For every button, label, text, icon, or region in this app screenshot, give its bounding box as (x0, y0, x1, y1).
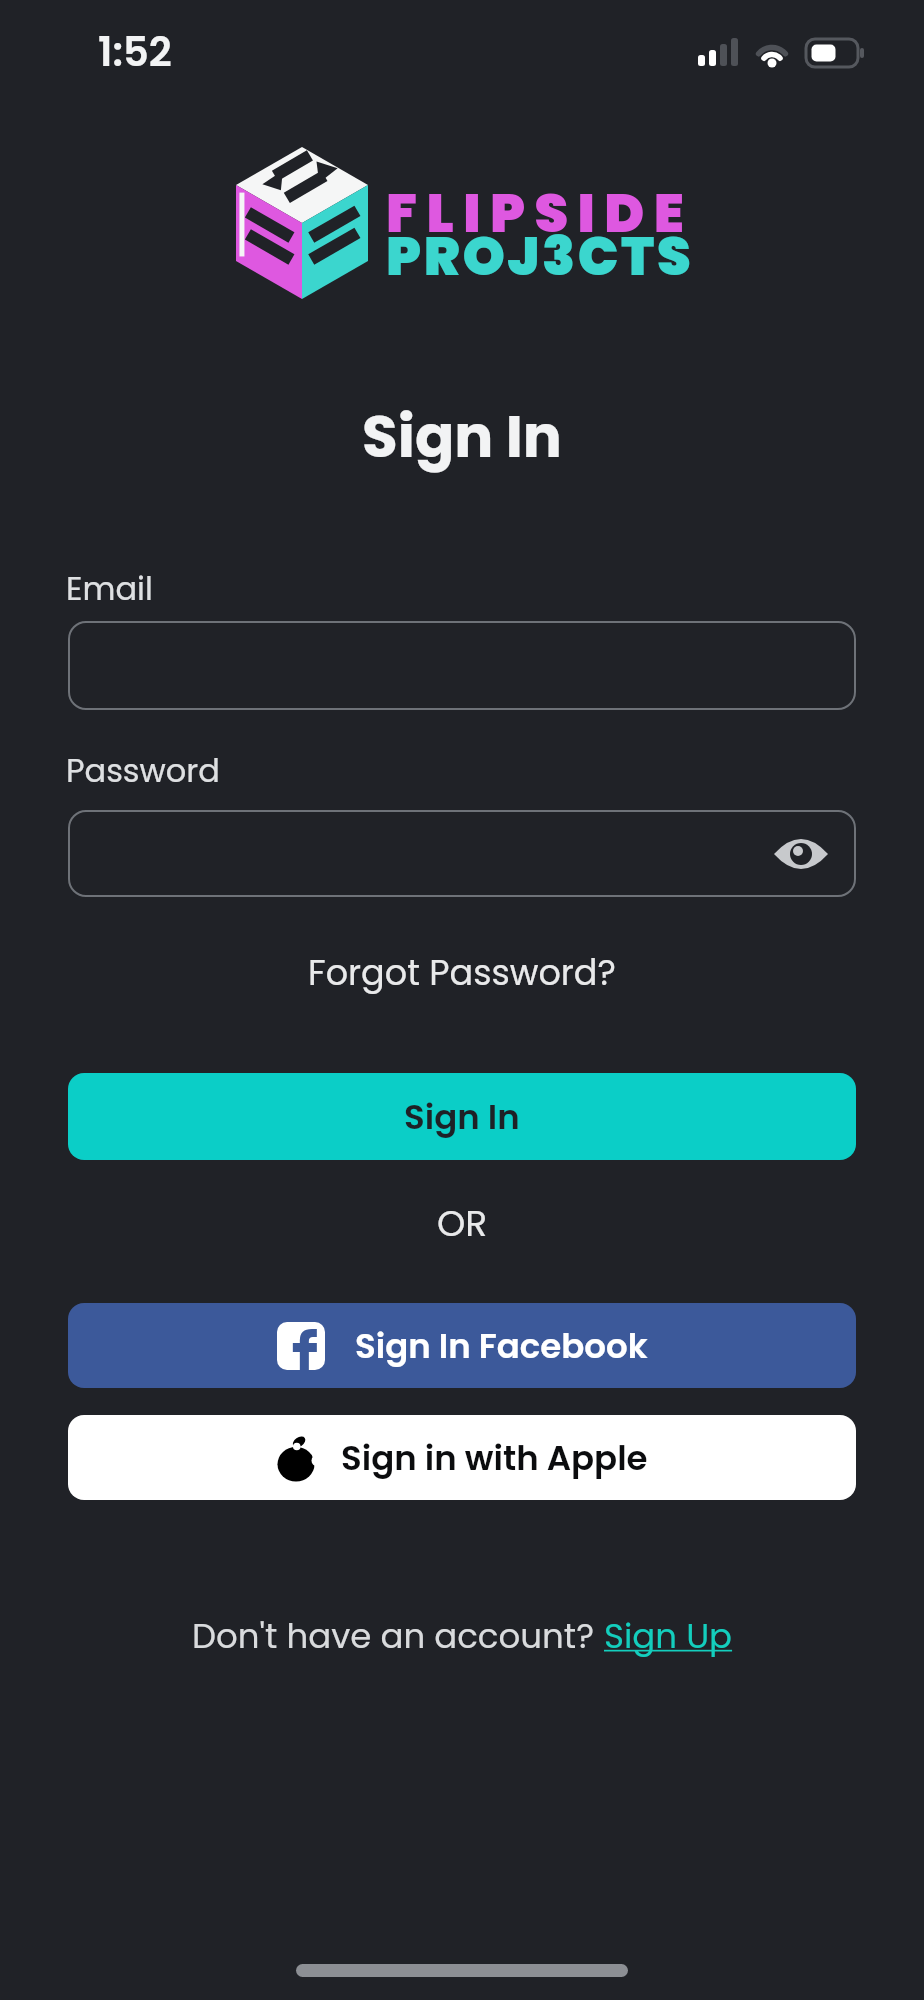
button[interactable] (68, 810, 856, 897)
staticText: Sign in with Apple (341, 1434, 648, 1482)
staticText: Email (66, 566, 153, 611)
staticText: FLIPSIDE (386, 175, 694, 251)
button[interactable]: Sign In (68, 1073, 856, 1160)
staticText: PROJ3CTS (386, 218, 694, 294)
button[interactable]: Sign Up (604, 1612, 733, 1660)
staticText: Don't have an account? (192, 1612, 604, 1660)
staticText: 1:52 (98, 24, 172, 80)
button[interactable] (68, 621, 856, 710)
button[interactable]: Forgot Password? (308, 948, 616, 997)
staticText: Sign Up (604, 1612, 733, 1660)
staticText: Sign In (0, 396, 924, 477)
staticText: Sign In (404, 1093, 520, 1141)
staticText: OR (0, 1198, 924, 1248)
staticText: Forgot Password? (308, 948, 616, 997)
button[interactable]: Sign In Facebook (68, 1303, 856, 1388)
staticText: Password (66, 748, 220, 793)
button[interactable]: Sign in with Apple (68, 1415, 856, 1500)
staticText: Sign In Facebook (355, 1322, 648, 1370)
